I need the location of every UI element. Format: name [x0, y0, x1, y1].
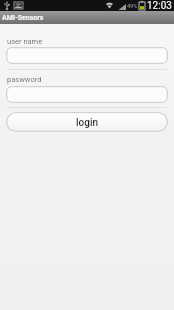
staticText: paswword [7, 75, 42, 84]
staticText: user name [7, 37, 43, 46]
other: USB connected [4, 1, 10, 10]
staticText: login [76, 117, 99, 129]
staticText: AMI-Sensors [2, 14, 44, 22]
button[interactable] [6, 86, 168, 103]
staticText: 12:03 [147, 0, 172, 11]
button[interactable]: login [6, 112, 168, 132]
button[interactable] [6, 47, 168, 64]
staticText: 49% [127, 3, 138, 9]
other: Screenshot captured [14, 2, 23, 9]
